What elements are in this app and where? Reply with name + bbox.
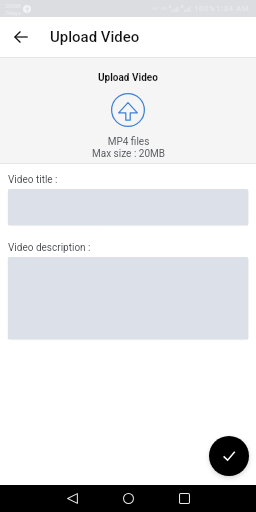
button[interactable]: Back bbox=[44, 485, 100, 512]
staticText: Video description : bbox=[8, 242, 91, 254]
button[interactable]: Home bbox=[100, 485, 156, 512]
staticText: MP4 files Max size : 20MB bbox=[92, 136, 165, 160]
staticText: 1:34 AM bbox=[216, 4, 250, 13]
button[interactable]: Submit bbox=[209, 436, 249, 476]
staticText: Video title : bbox=[8, 174, 58, 186]
staticText: 20MB bbox=[5, 2, 21, 9]
staticText: 7days bbox=[5, 9, 21, 16]
staticText: Upload Video bbox=[98, 72, 158, 84]
button[interactable]: Recents bbox=[156, 485, 212, 512]
button[interactable]: Back bbox=[9, 25, 33, 49]
staticText: Upload Video bbox=[50, 28, 140, 46]
staticText: 100% bbox=[194, 4, 215, 13]
